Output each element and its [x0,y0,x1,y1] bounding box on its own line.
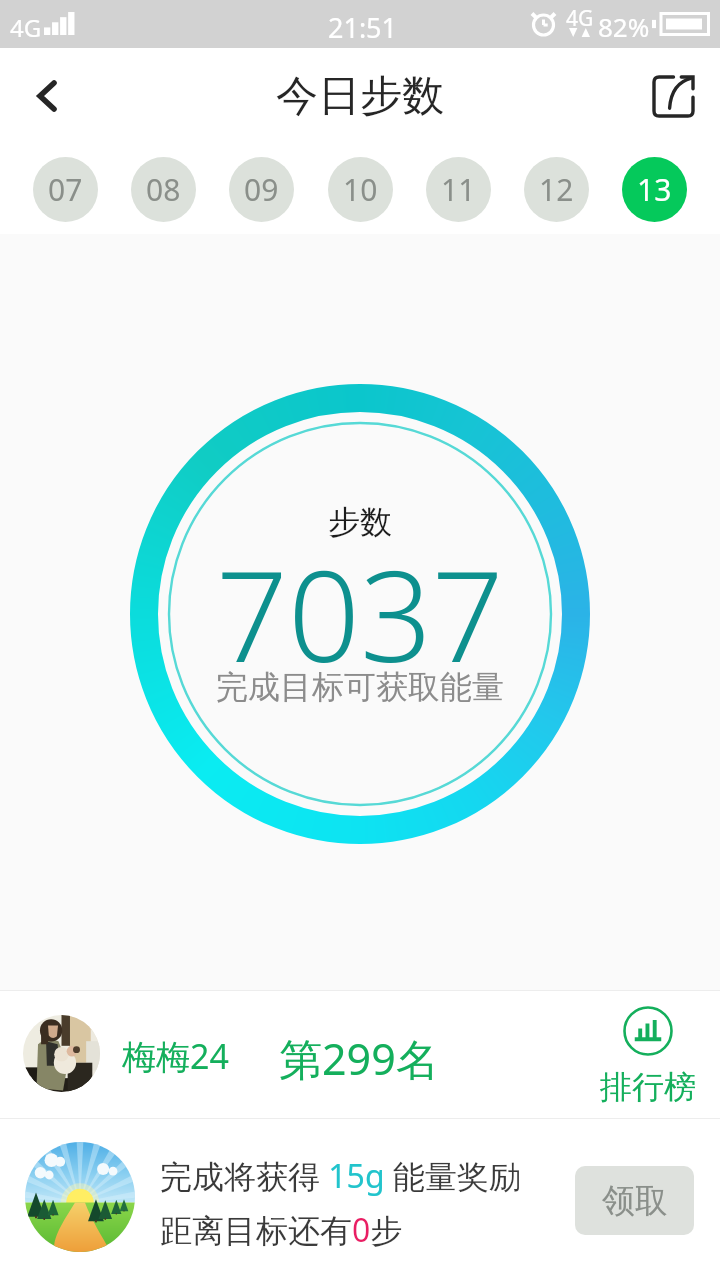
staticText: 排行榜 [600,1067,696,1107]
staticText: 12 [539,169,574,210]
staticText: 10 [343,169,378,210]
button[interactable]: 12 [524,157,589,222]
staticText: 今日步数 [276,70,444,123]
button[interactable]: Share [626,49,720,143]
staticText: 第299名 [279,1029,439,1088]
staticText: 07 [48,169,83,210]
staticText: 完成将获得 15g 能量奖励 [160,1154,521,1198]
staticText: 21:51 [328,9,398,46]
button[interactable]: 09 [229,157,294,222]
staticText: 领取 [602,1180,668,1222]
staticText: 4G [566,4,594,33]
staticText: 08 [146,169,181,210]
staticText: 距离目标还有0步 [160,1208,403,1252]
button[interactable]: 13 [622,157,687,222]
button[interactable]: Back [0,49,94,143]
button[interactable]: 排行榜 [596,1006,700,1107]
button[interactable]: 08 [131,157,196,222]
staticText: 梅梅24 [122,1033,229,1079]
staticText: 4G [10,11,42,44]
staticText: 11 [441,169,476,210]
staticText: 13 [637,169,672,210]
staticText: 09 [244,169,279,210]
staticText: 7037 [216,527,504,699]
staticText: 82% [598,9,650,44]
button[interactable]: 领取 [575,1166,694,1235]
staticText: 步数 [328,502,392,542]
staticText: 完成目标可获取能量 [216,667,504,707]
button[interactable]: 11 [426,157,491,222]
button[interactable]: 梅梅24 [0,991,470,1118]
button[interactable]: 10 [328,157,393,222]
button[interactable]: 07 [33,157,98,222]
